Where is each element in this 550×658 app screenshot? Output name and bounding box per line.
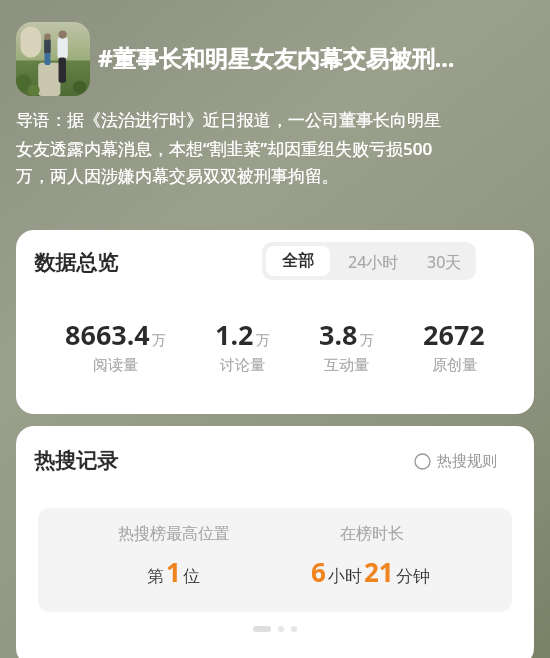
staticText: 热搜榜最高位置 (118, 524, 230, 544)
button[interactable]: 热搜记录 (34, 448, 118, 474)
staticText: 数据总览 (34, 250, 118, 276)
staticText: 2672 (423, 316, 485, 353)
staticText: 位 (183, 566, 200, 587)
button[interactable]: 全部 (266, 246, 330, 276)
staticText: 全部 (282, 251, 314, 271)
staticText: 讨论量 (220, 356, 265, 375)
button[interactable] (16, 22, 90, 96)
button[interactable]: 数据总览 (34, 250, 118, 276)
staticText: #董事长和明星女友内幕交易被刑… (98, 42, 455, 73)
staticText: 万 (152, 332, 166, 350)
staticText: 万，两人因涉嫌内幕交易双双被刑事拘留。 (16, 166, 339, 187)
staticText: 互动量 (324, 356, 369, 375)
staticText: 30天 (427, 251, 462, 271)
staticText: 3.8 (319, 316, 358, 353)
staticText: 万 (360, 332, 374, 350)
staticText: 6 (311, 554, 326, 589)
staticText: 阅读量 (93, 356, 138, 375)
staticText: 21 (364, 554, 394, 589)
staticText: 第 (147, 566, 164, 587)
staticText: 小时 (328, 566, 362, 587)
staticText: 热搜记录 (34, 448, 118, 474)
staticText: 在榜时长 (340, 524, 404, 544)
staticText: 1.2 (215, 316, 254, 353)
button[interactable]: 24小时 (334, 242, 413, 280)
staticText: 万 (256, 332, 270, 350)
button[interactable]: #董事长和明星女友内幕交易被刑… (98, 42, 538, 73)
staticText: 导语：据《法治进行时》近日报道，一公司董事长向明星 (16, 110, 441, 131)
staticText: 热搜规则 (437, 452, 497, 471)
staticText: 24小时 (348, 251, 399, 271)
staticText: 女友透露内幕消息，本想“割韭菜”却因重组失败亏损500 (16, 137, 433, 160)
staticText: 1 (166, 554, 181, 589)
button[interactable]: 30天 (413, 242, 476, 280)
staticText: 8663.4 (65, 316, 150, 353)
staticText: 分钟 (396, 566, 430, 587)
button[interactable]: 热搜规则 (414, 452, 497, 471)
staticText: 原创量 (432, 356, 477, 375)
